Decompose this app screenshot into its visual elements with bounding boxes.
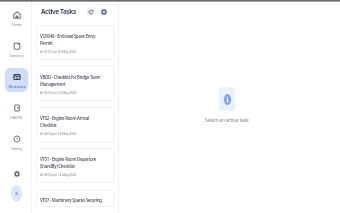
- button[interactable]: HSEPOL: [5, 99, 28, 123]
- button[interactable]: Refresh: [86, 7, 95, 16]
- button[interactable]: VT01 - Engine Room Departure (StandBy) C…: [36, 148, 115, 183]
- staticText: Workspace: [8, 84, 26, 88]
- staticText: Directory: [9, 53, 24, 57]
- button[interactable]: Home: [5, 6, 28, 30]
- button[interactable]: Filter settings: [99, 7, 108, 16]
- staticText: At 08:03 pm 14-May-2022: [40, 172, 77, 177]
- staticText: Home: [12, 22, 22, 26]
- staticText: History: [11, 146, 23, 150]
- staticText: At 08:54 pm 14-May-2022: [40, 131, 77, 136]
- button[interactable]: VT07 - Machinery Spaces Securing Checkli…: [36, 189, 115, 207]
- staticText: VT07 - Machinery Spaces Securing Checkli…: [40, 197, 105, 203]
- staticText: VT02 - Engine Room Arrival Checklist: [40, 115, 105, 128]
- button[interactable]: Profile: [11, 185, 22, 202]
- staticText: Active Tasks: [41, 7, 76, 16]
- button[interactable]: Settings: [10, 167, 23, 180]
- staticText: At 01:07 pm 20-May-2022: [40, 49, 77, 54]
- button[interactable]: VOS048 - Enclosed Space Entry Permit: [36, 25, 115, 60]
- staticText: VBOD - Checklist for Bridge Team Managem…: [40, 74, 105, 87]
- staticText: VOS048 - Enclosed Space Entry Permit: [40, 33, 105, 46]
- button[interactable]: Workspace: [5, 68, 28, 92]
- button[interactable]: VT02 - Engine Room Arrival Checklist: [36, 107, 115, 142]
- staticText: Select an active task: [205, 116, 249, 123]
- staticText: HSEPOL: [10, 115, 23, 119]
- staticText: At 03:45 pm 15-May-2022: [40, 90, 77, 95]
- button[interactable]: History: [5, 130, 28, 154]
- staticText: VT01 - Engine Room Departure (StandBy) C…: [40, 156, 105, 169]
- button[interactable]: VBOD - Checklist for Bridge Team Managem…: [36, 66, 115, 101]
- button[interactable]: Directory: [5, 37, 28, 61]
